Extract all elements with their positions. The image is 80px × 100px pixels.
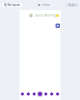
button[interactable]: Share [65, 3, 78, 7]
button[interactable]: My Workspace [1, 3, 22, 7]
button[interactable]: Tab 6 [49, 90, 55, 98]
button[interactable]: Tab 7 [55, 90, 60, 98]
button[interactable]: Tab 1 [19, 90, 25, 98]
button[interactable]: Tab 3 [31, 90, 37, 98]
staticText: Share [68, 3, 75, 7]
button[interactable]: Assistant [55, 23, 60, 28]
staticText: Good morning [35, 14, 56, 17]
button[interactable]: Tab 5 [43, 90, 49, 98]
staticText: Preview [41, 3, 50, 7]
staticText: My Workspace [3, 3, 20, 7]
button[interactable]: Tab 2 [25, 90, 31, 98]
button[interactable]: Tab 4 [37, 90, 43, 98]
